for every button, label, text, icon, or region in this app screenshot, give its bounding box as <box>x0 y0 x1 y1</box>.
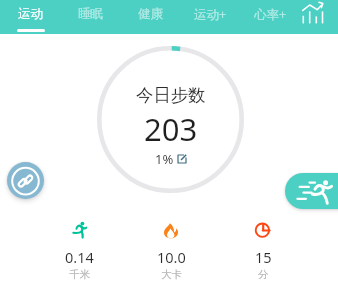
staticText: 今日步数 <box>136 84 206 106</box>
button[interactable]: 0.14 <box>33 221 125 281</box>
button[interactable]: 心率+ <box>240 0 300 34</box>
button[interactable]: 睡眠 <box>60 0 120 34</box>
button[interactable]: 10.0 <box>125 221 217 281</box>
button[interactable]: Link <box>7 162 44 199</box>
staticText: 10.0 <box>157 247 186 267</box>
button[interactable]: 运动+ <box>180 0 240 34</box>
staticText: 1% <box>155 150 174 168</box>
staticText: 心率+ <box>254 6 287 23</box>
staticText: 运动 <box>18 6 43 22</box>
staticText: 0.14 <box>65 247 94 267</box>
staticText: 203 <box>144 108 198 150</box>
button[interactable]: Statistics <box>298 0 328 30</box>
button[interactable]: Start run <box>285 173 338 209</box>
button[interactable]: 运动 <box>0 0 60 34</box>
staticText: 分 <box>258 268 269 281</box>
staticText: 运动+ <box>194 6 227 23</box>
staticText: 睡眠 <box>78 6 103 22</box>
staticText: 千米 <box>69 268 90 281</box>
staticText: 大卡 <box>161 268 182 281</box>
staticText: 15 <box>255 247 272 267</box>
staticText: 健康 <box>138 6 163 22</box>
button[interactable]: 健康 <box>120 0 180 34</box>
button[interactable]: 15 <box>217 221 309 281</box>
